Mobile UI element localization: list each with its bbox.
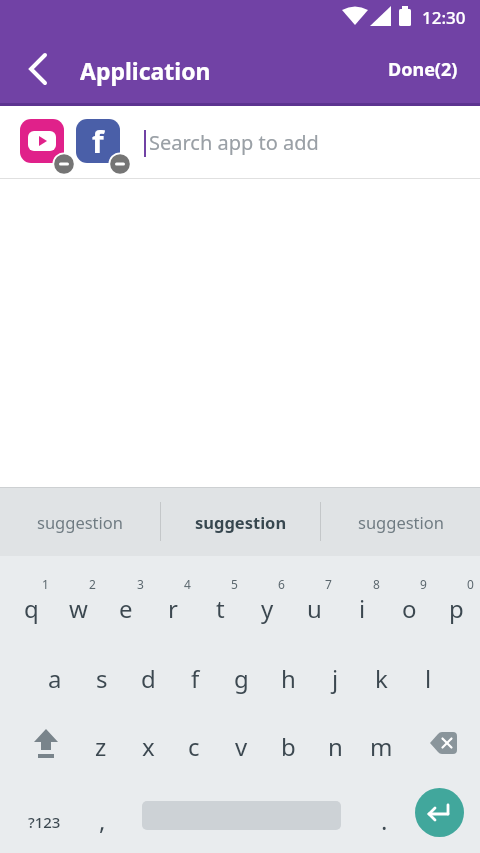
button[interactable] — [20, 119, 64, 163]
staticText: l — [425, 662, 432, 695]
staticText: m — [370, 730, 393, 763]
staticText: p — [449, 592, 464, 625]
button[interactable]: q — [8, 585, 54, 631]
staticText: e — [119, 592, 133, 625]
staticText: ?123 — [28, 812, 61, 832]
staticText: 2 — [89, 576, 96, 592]
button[interactable]: m — [358, 723, 404, 769]
staticText: 5 — [231, 576, 238, 592]
button[interactable]: suggestion — [0, 487, 160, 556]
button[interactable]: . — [361, 797, 407, 843]
button[interactable]: o — [386, 585, 432, 631]
staticText: c — [188, 730, 200, 763]
staticText: f — [92, 121, 104, 162]
button[interactable]: d — [125, 655, 171, 701]
button[interactable]: j — [312, 655, 358, 701]
staticText: suggestion — [195, 511, 287, 533]
staticText: z — [95, 730, 107, 763]
staticText: 0 — [467, 576, 474, 592]
button[interactable]: f — [172, 655, 218, 701]
staticText: k — [375, 662, 388, 695]
staticText: r — [168, 592, 178, 625]
staticText: y — [261, 592, 274, 625]
button[interactable]: 7 — [305, 561, 351, 607]
button[interactable]: v — [218, 723, 264, 769]
staticText: f — [191, 662, 200, 695]
staticText: 7 — [325, 576, 332, 592]
button[interactable] — [22, 722, 70, 770]
staticText: n — [328, 730, 343, 763]
button[interactable] — [416, 722, 464, 770]
button[interactable]: z — [78, 723, 124, 769]
staticText: a — [48, 662, 62, 695]
button[interactable]: l — [405, 655, 451, 701]
button[interactable]: k — [358, 655, 404, 701]
staticText: s — [96, 662, 108, 695]
staticText: 9 — [420, 576, 427, 592]
staticText: i — [359, 592, 366, 625]
button[interactable]: Search app to add — [149, 129, 319, 156]
button[interactable]: 9 — [400, 561, 446, 607]
staticText: 3 — [137, 576, 144, 592]
button[interactable]: ?123 — [21, 799, 67, 845]
button[interactable]: e — [103, 585, 149, 631]
staticText: j — [332, 662, 339, 695]
button[interactable]: w — [55, 585, 101, 631]
button[interactable]: n — [312, 723, 358, 769]
staticText: . — [381, 804, 388, 837]
button[interactable]: x — [125, 723, 171, 769]
staticText: suggestion — [358, 511, 444, 533]
staticText: u — [307, 592, 322, 625]
button[interactable]: , — [79, 797, 125, 843]
staticText: w — [69, 592, 88, 625]
button[interactable]: c — [171, 723, 217, 769]
staticText: suggestion — [37, 511, 123, 533]
staticText: 6 — [278, 576, 285, 592]
button[interactable] — [415, 788, 464, 837]
button[interactable]: 5 — [211, 561, 257, 607]
staticText: o — [402, 592, 417, 625]
staticText: b — [281, 730, 296, 763]
staticText: t — [216, 592, 225, 625]
staticText: Application — [80, 55, 211, 86]
button[interactable]: suggestion — [161, 487, 320, 556]
staticText: 1 — [42, 576, 49, 592]
staticText: x — [142, 730, 155, 763]
staticText: 8 — [373, 576, 380, 592]
button[interactable]: 8 — [353, 561, 399, 607]
button[interactable]: a — [32, 655, 78, 701]
button[interactable]: 3 — [117, 561, 163, 607]
button[interactable]: y — [244, 585, 290, 631]
button[interactable]: 2 — [69, 561, 115, 607]
button[interactable]: 0 — [447, 561, 480, 607]
staticText: h — [281, 662, 296, 695]
button[interactable] — [14, 46, 60, 92]
button[interactable]: b — [265, 723, 311, 769]
button[interactable]: 4 — [164, 561, 210, 607]
button[interactable]: i — [339, 585, 385, 631]
staticText: 12:30 — [422, 6, 466, 29]
button[interactable]: r — [150, 585, 196, 631]
button[interactable]: 1 — [22, 561, 68, 607]
button[interactable]: f — [76, 119, 120, 163]
button[interactable]: 6 — [258, 561, 304, 607]
button[interactable]: p — [433, 585, 479, 631]
button[interactable]: u — [291, 585, 337, 631]
staticText: , — [99, 804, 106, 837]
staticText: d — [141, 662, 156, 695]
button[interactable]: h — [265, 655, 311, 701]
button[interactable]: Done(2) — [388, 57, 458, 82]
staticText: g — [234, 662, 249, 695]
staticText: v — [235, 730, 248, 763]
button[interactable]: g — [218, 655, 264, 701]
button[interactable]: suggestion — [321, 487, 480, 556]
button[interactable]: s — [79, 655, 125, 701]
button[interactable]: t — [197, 585, 243, 631]
staticText: 4 — [184, 576, 191, 592]
staticText: q — [24, 592, 39, 625]
